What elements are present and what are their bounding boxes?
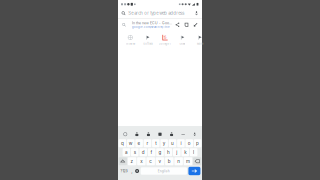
staticText: r [146,140,148,146]
staticText: s [134,149,136,155]
button[interactable]: n [174,157,183,165]
staticText: t [155,140,156,146]
button[interactable]: h [165,148,172,156]
staticText: b [168,158,171,164]
button[interactable]: e [135,139,143,147]
staticText: d [142,149,145,155]
staticText: e [138,140,141,146]
button[interactable]: c [146,157,155,165]
staticText: n [177,158,180,164]
staticText: x [140,158,142,164]
button[interactable]: Share [173,18,182,31]
staticText: h [167,149,170,155]
staticText: m [186,158,190,164]
button[interactable]: q [119,139,126,147]
staticText: Softwa [143,42,152,45]
button[interactable]: w [127,139,135,147]
button[interactable]: Edit search [191,18,200,31]
button[interactable]: y [160,139,168,147]
button[interactable]: Settings [135,167,139,175]
button[interactable]: r [144,139,151,147]
button[interactable]: Search or type web address [118,8,202,18]
button[interactable]: Keyboard tool [143,130,154,139]
button[interactable]: Other [174,31,191,48]
button[interactable]: z [128,157,136,165]
staticText: More [197,42,203,45]
button[interactable]: p [194,139,201,147]
staticText: c [149,158,152,164]
button[interactable]: Comma [130,167,133,175]
button[interactable]: x [137,157,146,165]
staticText: y [163,140,166,146]
button[interactable]: Keyboard tool [119,130,131,139]
button[interactable]: t [152,139,160,147]
button[interactable]: Keyboard tool [154,130,166,139]
button[interactable]: b [165,157,174,165]
button[interactable]: v [156,157,164,165]
staticText: l [193,149,194,155]
staticText: j [176,149,177,155]
button[interactable]: k [181,148,189,156]
staticText: o [188,140,191,146]
button[interactable]: f [148,148,155,156]
staticText: p [196,140,199,146]
button[interactable]: i [177,139,185,147]
button[interactable]: Copy [182,18,191,31]
staticText: In the ne [126,42,135,45]
staticText: w [129,140,133,146]
button[interactable]: l [190,148,197,156]
button[interactable]: Backspace [193,157,201,165]
button[interactable]: Keyboard tool [177,130,189,139]
button[interactable]: s [131,148,139,156]
button[interactable]: a [123,148,130,156]
staticText: Other [179,42,185,45]
button[interactable]: In the new ECU - Goog… [118,18,173,31]
button[interactable]: Keyboard tool [166,130,177,139]
button[interactable]: d [139,148,147,156]
button[interactable]: English [141,167,187,175]
staticText: k [184,149,186,155]
button[interactable]: Shift [119,157,127,165]
staticText: 15 [164,35,167,39]
button[interactable]: More [191,31,209,48]
button[interactable]: o [185,139,193,147]
button[interactable]: u [169,139,176,147]
staticText: z [131,158,134,164]
staticText: a [125,149,128,155]
staticText: g [158,149,161,155]
button[interactable]: m [184,157,192,165]
staticText: In the new ECU - Goog… [132,21,173,25]
staticText: College T [159,42,172,45]
button[interactable]: Go [188,167,200,175]
staticText: v [158,158,161,164]
button[interactable]: Keyboard tool [189,130,200,139]
staticText: Search or type web address [128,11,184,16]
staticText: ?123 [121,169,128,173]
button[interactable]: g [156,148,164,156]
button[interactable]: ?123 [120,167,129,175]
button[interactable]: Keyboard tool [131,130,143,139]
staticText: google.com/search?q=the [132,25,170,29]
button[interactable]: 15 [156,31,174,48]
staticText: u [171,140,174,146]
staticText: English [158,169,170,173]
staticText: , [131,168,132,174]
button[interactable]: Softwa [139,31,156,48]
button[interactable]: In the ne [122,31,139,48]
staticText: i [180,140,181,146]
staticText: q [121,140,124,146]
staticText: f [151,149,153,155]
button[interactable]: j [173,148,181,156]
